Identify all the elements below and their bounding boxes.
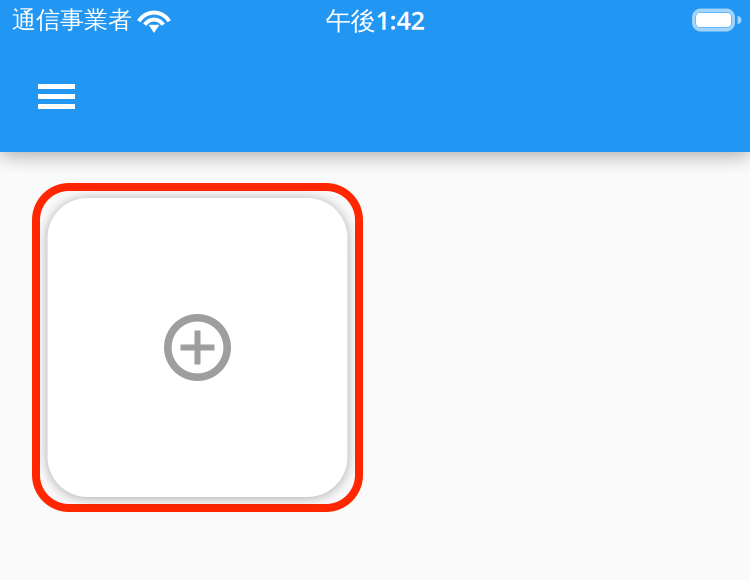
staticText: 通信事業者 xyxy=(12,5,132,35)
staticText: 午後1:42 xyxy=(325,3,424,37)
button[interactable]: Add photo xyxy=(32,183,363,512)
button[interactable]: Menu xyxy=(28,68,85,124)
